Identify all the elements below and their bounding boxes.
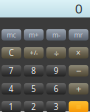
button[interactable]: m-	[46, 29, 66, 41]
button[interactable]: ÷	[46, 47, 66, 59]
staticText: +	[76, 82, 81, 95]
staticText: 3	[54, 101, 59, 112]
button[interactable]: 8	[24, 65, 44, 77]
button[interactable]: 7	[1, 65, 21, 77]
staticText: 2	[31, 101, 36, 112]
button[interactable]: ×	[69, 47, 88, 59]
button[interactable]: =	[69, 101, 88, 112]
staticText: mr	[74, 30, 83, 39]
staticText: 0	[75, 0, 83, 18]
button[interactable]: 1	[1, 101, 21, 112]
staticText: C	[9, 47, 14, 58]
button[interactable]: −	[69, 65, 88, 77]
button[interactable]: mr	[69, 29, 88, 41]
staticText: +/-	[30, 48, 38, 57]
staticText: m+	[29, 30, 39, 39]
button[interactable]: 5	[24, 83, 44, 95]
button[interactable]: mc	[1, 29, 21, 41]
staticText: mc	[7, 30, 16, 39]
staticText: m-	[52, 30, 60, 39]
button[interactable]: 6	[46, 83, 66, 95]
staticText: 9	[54, 65, 59, 76]
button[interactable]: +	[69, 83, 88, 95]
button[interactable]: 2	[24, 101, 44, 112]
staticText: ÷	[54, 46, 59, 59]
staticText: 1	[9, 101, 14, 112]
staticText: −	[76, 64, 81, 77]
staticText: ×	[76, 47, 81, 58]
button[interactable]: 4	[1, 83, 21, 95]
button[interactable]: C	[1, 47, 21, 59]
staticText: 7	[9, 65, 14, 76]
button[interactable]: m+	[24, 29, 44, 41]
staticText: 6	[54, 83, 59, 94]
staticText: =	[76, 100, 81, 112]
button[interactable]: 9	[46, 65, 66, 77]
button[interactable]: 3	[46, 101, 66, 112]
staticText: 8	[31, 65, 36, 76]
button[interactable]: +/-	[24, 47, 44, 59]
staticText: 5	[31, 83, 36, 94]
staticText: 4	[9, 83, 14, 94]
